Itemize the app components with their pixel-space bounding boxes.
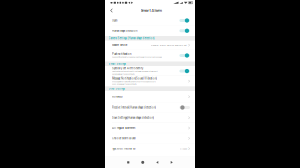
staticText: Choose alarm sound [112, 137, 136, 140]
button[interactable]: Back [107, 5, 116, 15]
staticText: Specially set Alert/Severity [112, 67, 143, 70]
button[interactable]: Forward [164, 157, 179, 168]
button[interactable]: Specially set Alert/Severity [105, 66, 195, 76]
staticText: Advanced [112, 95, 123, 98]
button[interactable]: Message Notification(Sound/Vibration) [105, 76, 195, 86]
button[interactable]: Choose alarm sound [105, 133, 195, 143]
staticText: Human shape detection [112, 29, 137, 32]
button[interactable]: Push notification [105, 49, 195, 61]
staticText: Other Settings [108, 87, 124, 90]
button[interactable]: Open [105, 15, 195, 25]
staticText: Save Settings(Human shape detection) [112, 116, 154, 119]
staticText: Push notification is turned on when the … [112, 56, 162, 58]
button[interactable]: Human shape detection [105, 25, 195, 36]
button[interactable]: Receive Interval(Human shape detection) [105, 102, 195, 113]
button[interactable]: Back [150, 157, 164, 168]
button[interactable]: Advanced [105, 91, 195, 102]
staticText: Camera Settings (Human shape detection) [108, 37, 154, 40]
button[interactable]: All regular alarmmm [105, 123, 195, 133]
staticText: General alarm Service analysis set [151, 44, 187, 46]
staticText: Closed [180, 147, 187, 150]
staticText: send, Public alert and continuity [112, 73, 135, 75]
staticText: Message Notification(Sound/Vibration) [112, 77, 157, 80]
staticText: Smart Alarm [140, 8, 161, 13]
staticText: soon. Enable alert and continuity [112, 83, 137, 85]
button[interactable]: Home [135, 157, 150, 168]
button[interactable]: Type Alert interval bo [105, 143, 195, 154]
button[interactable]: Save Settings(Human shape detection) [105, 113, 195, 123]
staticText: Receive Interval(Human shape detection) [112, 106, 156, 109]
button[interactable]: Master service [105, 41, 195, 49]
staticText: Message interval notification to your me… [112, 80, 156, 83]
staticText: All regular alarmmm [112, 126, 135, 130]
staticText: Type Alert interval bo [112, 147, 136, 150]
staticText: Push notification [112, 53, 131, 56]
staticText: Open [112, 19, 117, 22]
staticText: Use the timestamp to set trustable remin… [112, 70, 158, 73]
staticText: Email Settings [108, 62, 125, 65]
staticText: Master service [112, 44, 127, 47]
button[interactable]: Recent apps [121, 157, 135, 168]
